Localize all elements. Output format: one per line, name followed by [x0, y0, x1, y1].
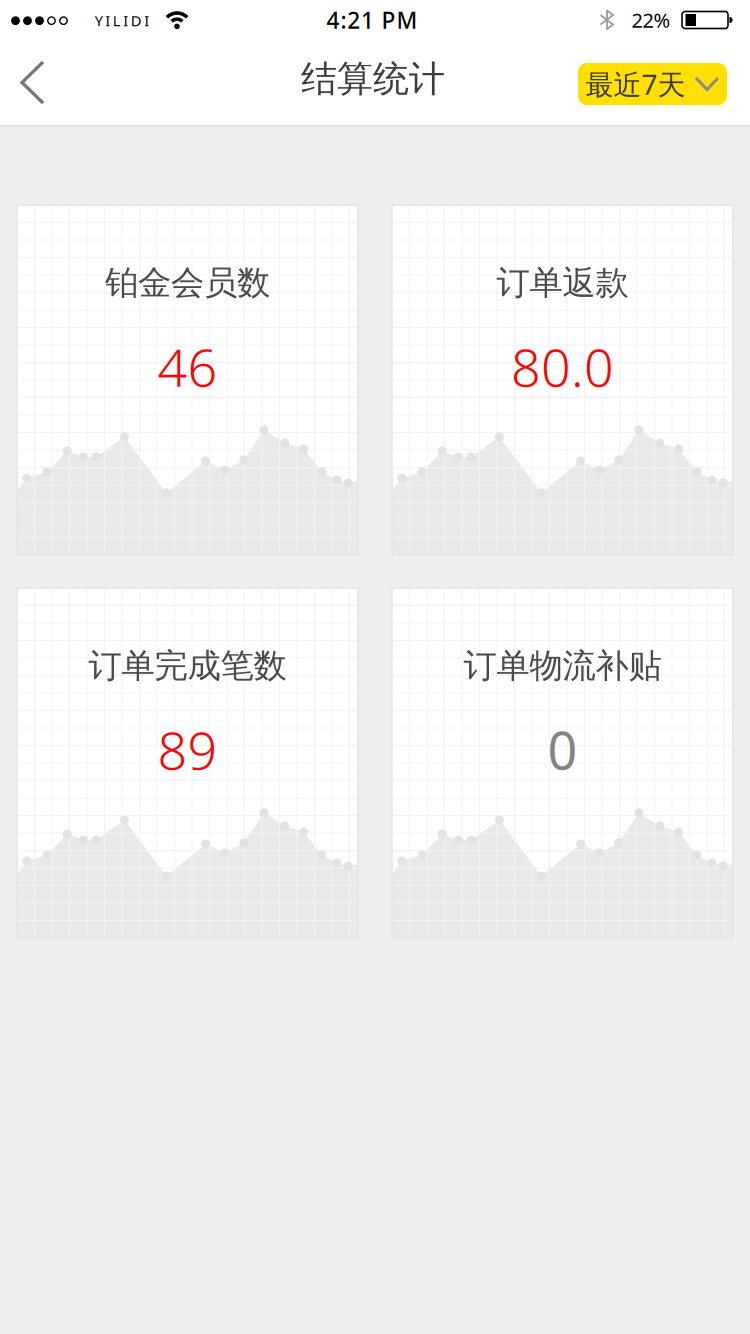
- staticText: 铂金会员数: [105, 262, 270, 303]
- button[interactable]: 最近7天: [578, 63, 727, 105]
- staticText: YILIDI: [95, 11, 149, 30]
- staticText: 22%: [631, 7, 670, 33]
- staticText: 订单返款: [496, 262, 628, 303]
- staticText: 4:21 PM: [327, 5, 417, 35]
- staticText: 89: [157, 715, 217, 784]
- staticText: 0: [547, 715, 577, 784]
- staticText: 46: [157, 332, 217, 401]
- staticText: 80.0: [511, 332, 614, 401]
- staticText: 订单完成笔数: [88, 645, 286, 686]
- staticText: 订单物流补贴: [463, 645, 661, 686]
- staticText: 结算统计: [301, 57, 445, 101]
- button[interactable]: [0, 49, 60, 116]
- staticText: 最近7天: [585, 65, 685, 103]
